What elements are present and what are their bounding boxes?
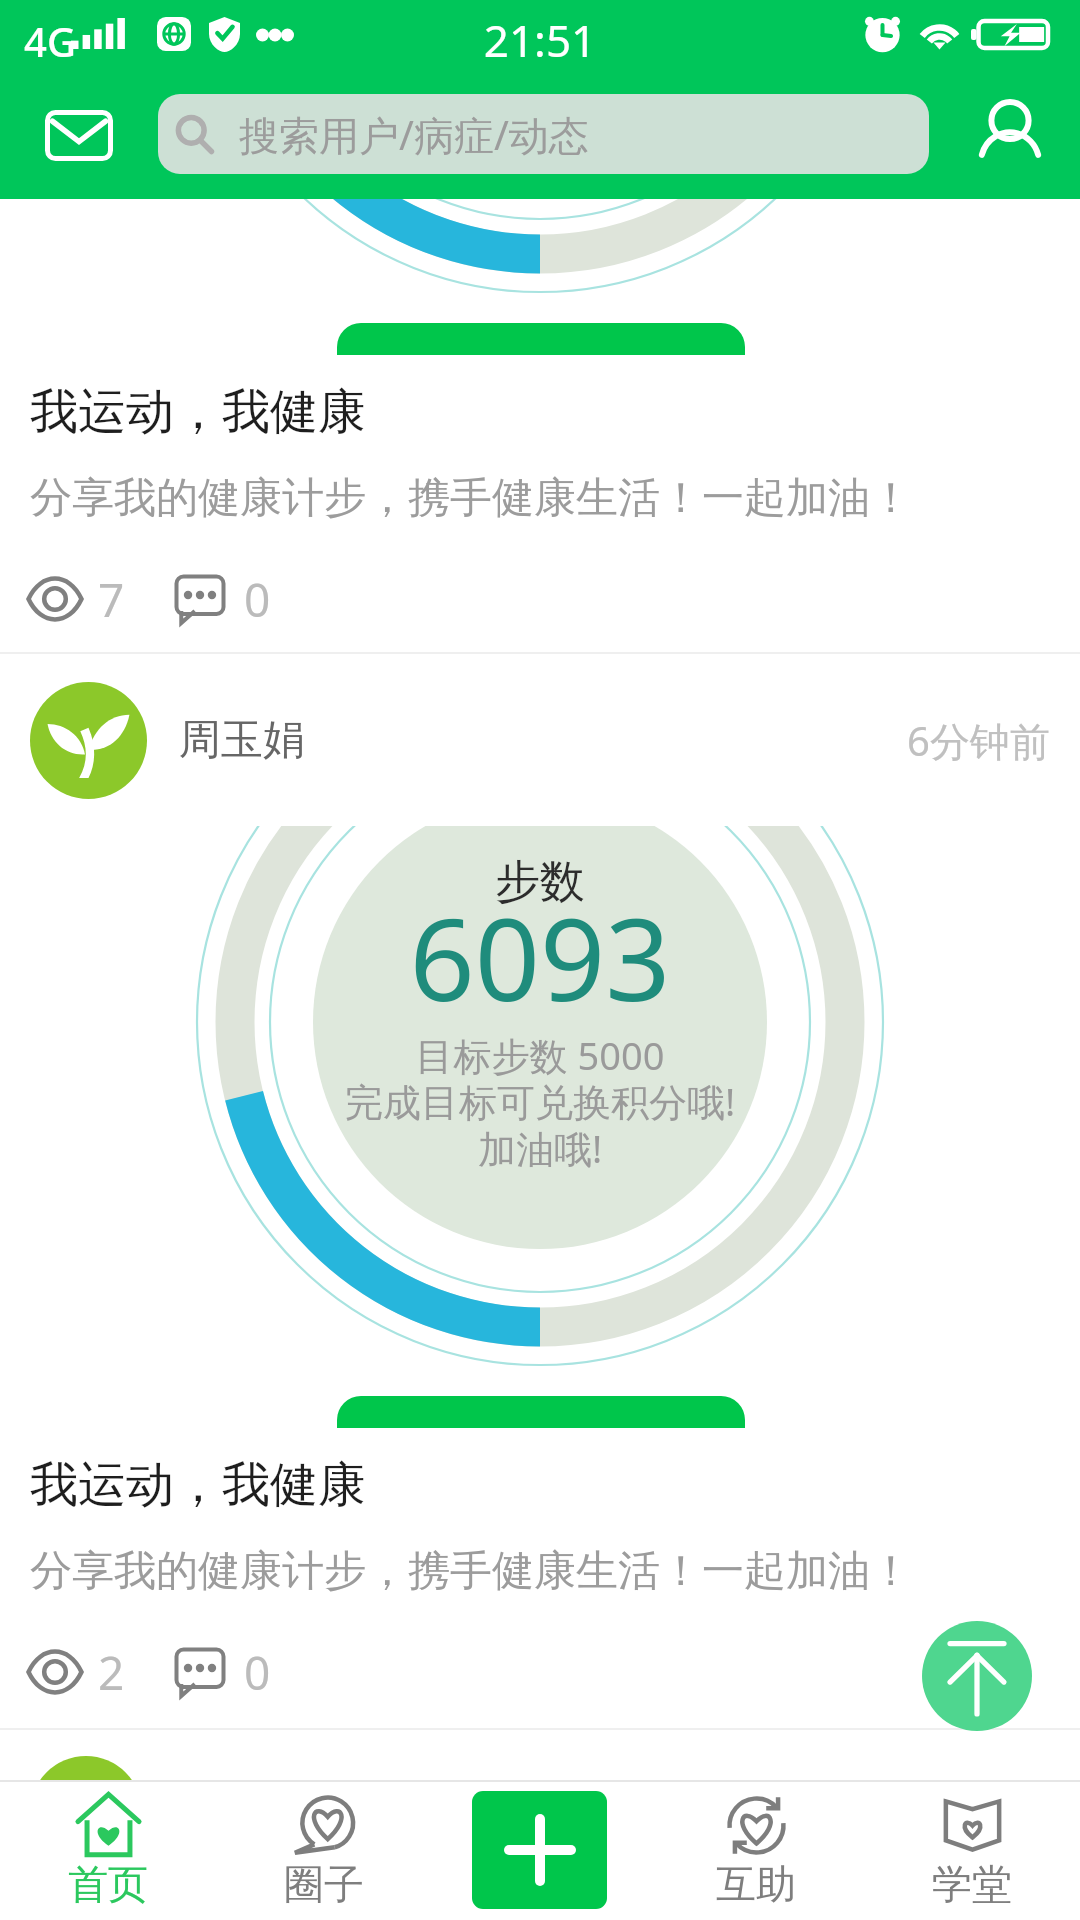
staticText: 6分钟前 xyxy=(907,713,1050,768)
button[interactable]: 圈子 xyxy=(216,1780,432,1920)
staticText: 分享我的健康计步，携手健康生活！一起加油！ xyxy=(30,1545,912,1598)
button[interactable]: 互助 xyxy=(648,1780,864,1920)
staticText: 7 xyxy=(98,568,125,631)
button[interactable]: Messages xyxy=(22,88,136,182)
button[interactable]: Scroll to top xyxy=(922,1621,1032,1731)
staticText: 步数 xyxy=(0,854,1080,911)
staticText: 2 xyxy=(98,1641,125,1704)
staticText: 首页 xyxy=(0,1859,216,1909)
staticText: 学堂 xyxy=(864,1859,1080,1909)
button[interactable]: Add post xyxy=(472,1791,607,1909)
button[interactable]: 周玉娟 xyxy=(30,654,1050,826)
staticText: 圈子 xyxy=(216,1859,432,1909)
button[interactable]: 学堂 xyxy=(864,1780,1080,1920)
staticText: 0 xyxy=(244,568,271,631)
staticText: 4G xyxy=(24,14,76,68)
button[interactable]: 2 xyxy=(26,1634,125,1710)
button[interactable]: 0 xyxy=(174,1634,271,1710)
staticText: 目标步数 5000 完成目标可兑换积分哦! 加油哦! xyxy=(0,1029,1080,1175)
button[interactable]: 首页 xyxy=(0,1780,216,1920)
staticText: 周玉娟 xyxy=(179,714,305,767)
button[interactable]: 0 xyxy=(174,561,271,637)
staticText: 分享我的健康计步，携手健康生活！一起加油！ xyxy=(30,472,912,525)
button[interactable]: 7 xyxy=(26,561,125,637)
button[interactable]: Profile xyxy=(955,86,1065,184)
button[interactable]: 搜索用户/病症/动态 xyxy=(158,94,929,174)
staticText: 我运动，我健康 xyxy=(30,382,366,442)
staticText: 21:51 xyxy=(0,10,1080,70)
staticText: 我运动，我健康 xyxy=(30,1455,366,1515)
staticText: 搜索用户/病症/动态 xyxy=(239,107,589,162)
staticText: 0 xyxy=(244,1641,271,1704)
staticText: 互助 xyxy=(648,1859,864,1909)
staticText: 6093 xyxy=(0,879,1080,1034)
